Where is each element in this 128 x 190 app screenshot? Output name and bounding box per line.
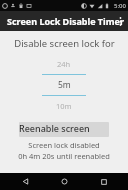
button[interactable]: More options (112, 11, 128, 31)
staticText: 10m (56, 101, 72, 111)
staticText: 5m (58, 79, 71, 91)
button[interactable]: 24h (42, 59, 86, 111)
button[interactable]: Reenable screen lock (19, 122, 109, 137)
staticText: Screen Lock Disable Timer (7, 15, 124, 27)
staticText: Disable screen lock for (14, 37, 115, 50)
button[interactable]: Recent apps (89, 173, 119, 190)
staticText: 0h 4m 20s until reenabled (18, 151, 110, 161)
button[interactable]: Home (49, 173, 79, 190)
staticText: 5:00 (114, 2, 126, 10)
staticText: 24h (57, 59, 71, 69)
button[interactable]: Back (10, 173, 40, 190)
staticText: Reenable screen lock (19, 122, 109, 137)
staticText: Screen lock disabled (28, 140, 100, 150)
